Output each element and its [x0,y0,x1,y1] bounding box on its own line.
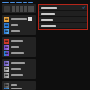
button[interactable] [2,60,36,66]
button[interactable] [2,50,36,56]
button[interactable] [2,28,36,34]
button[interactable] [2,4,36,13]
button[interactable] [2,82,36,88]
button[interactable] [2,16,36,22]
button[interactable] [2,0,90,4]
button[interactable] [2,66,36,72]
button[interactable] [39,11,87,16]
button[interactable]: Enabled [39,5,87,10]
button[interactable] [2,44,36,50]
button[interactable] [39,17,87,22]
button[interactable] [2,38,36,44]
other: Enabled [82,6,85,9]
button[interactable] [2,72,36,78]
button[interactable] [2,88,36,89]
button[interactable] [39,23,87,28]
button[interactable] [2,22,36,28]
